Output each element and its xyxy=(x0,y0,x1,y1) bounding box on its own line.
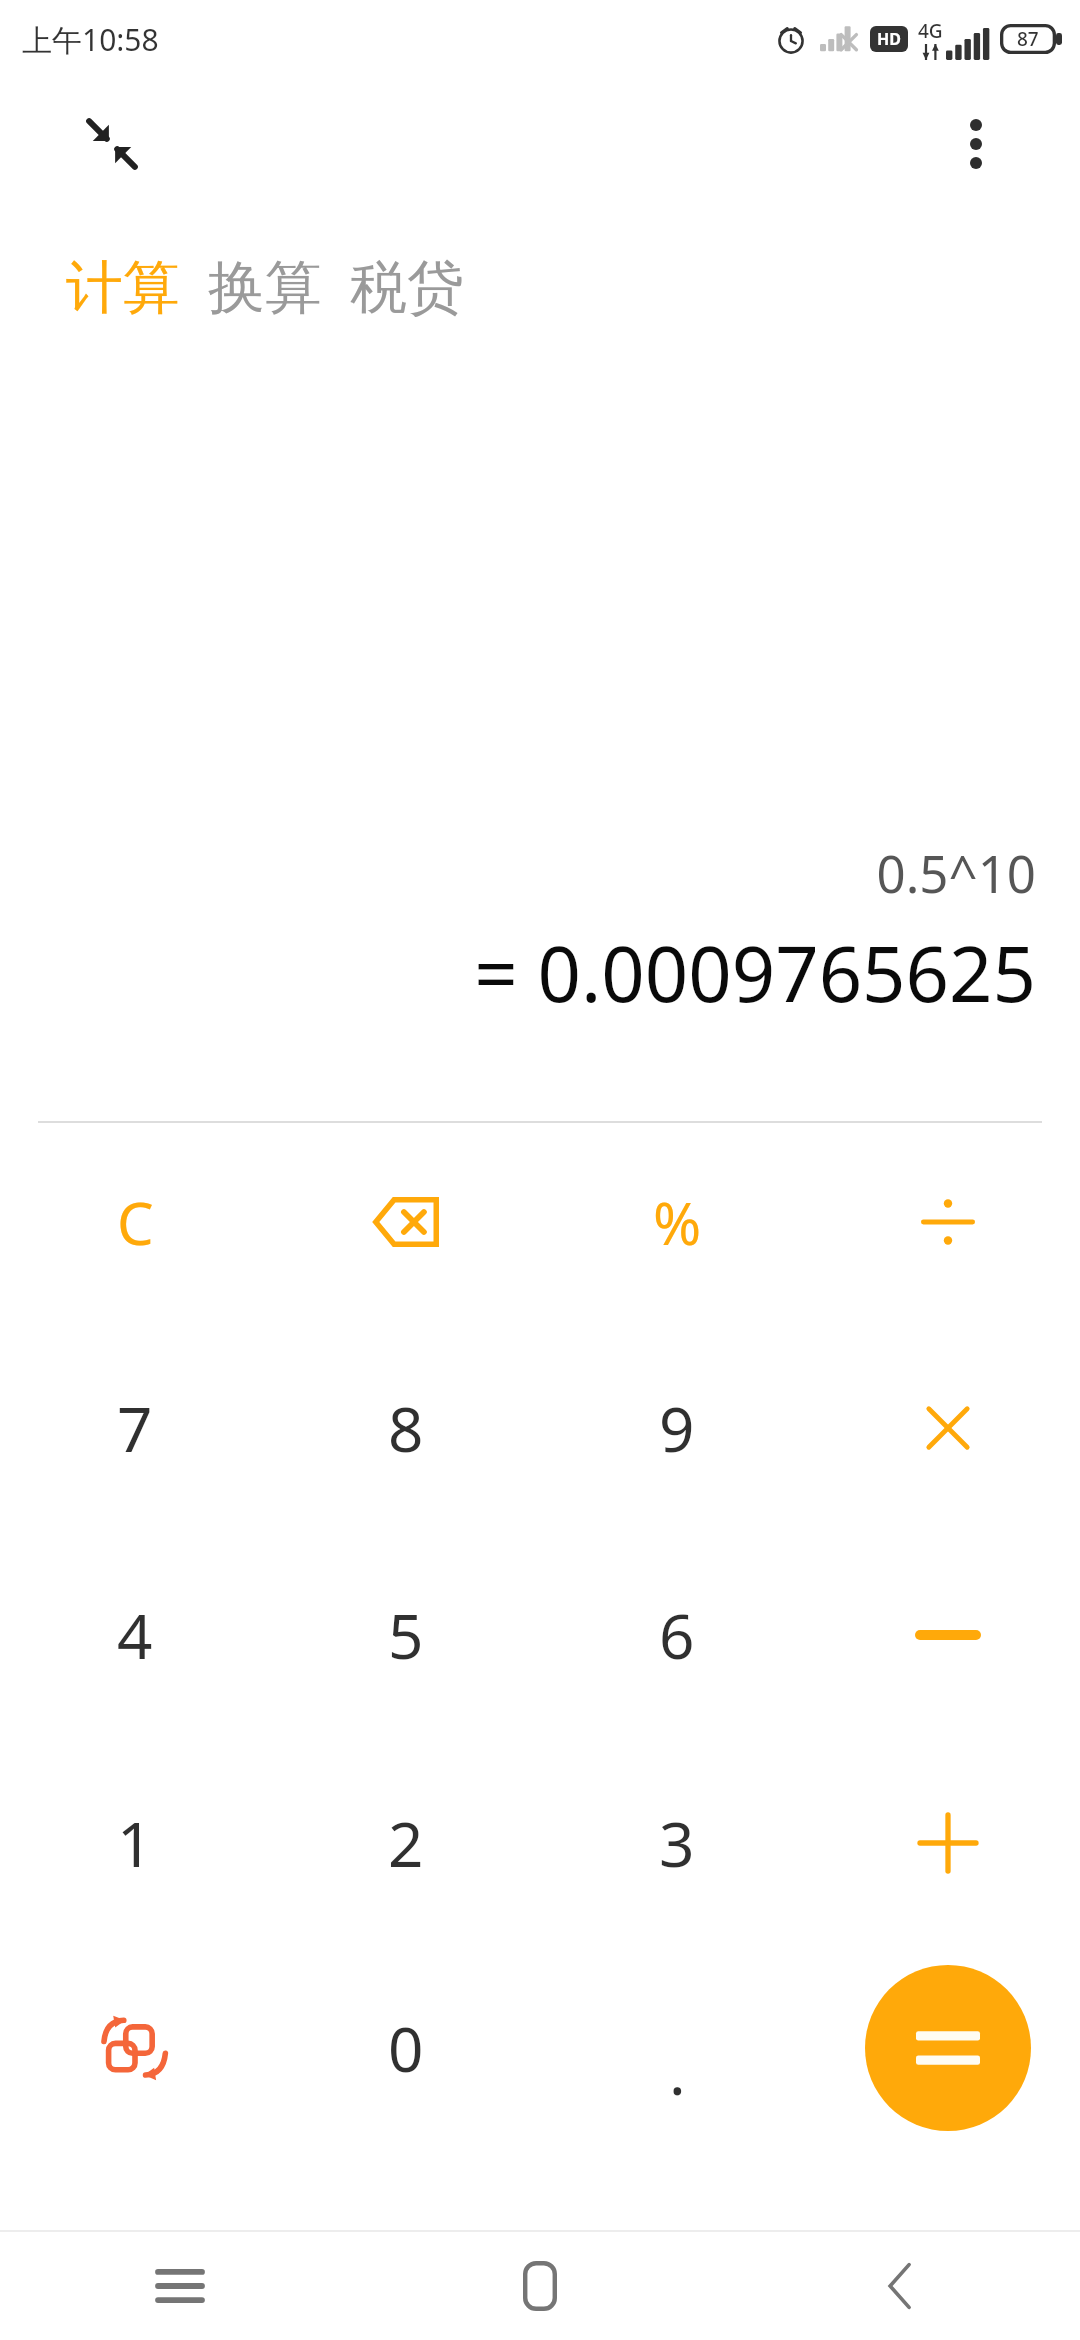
button[interactable]: Backspace xyxy=(286,1122,526,1322)
staticText: 5 xyxy=(388,1593,424,1677)
button[interactable]: Back xyxy=(720,2232,1080,2340)
button[interactable]: 计算 xyxy=(66,252,180,324)
staticText: = 0.0009765625 xyxy=(40,921,1036,1025)
staticText: 换算 xyxy=(208,252,322,324)
button[interactable]: 3 xyxy=(557,1743,797,1943)
button[interactable]: 税贷 xyxy=(350,252,464,324)
button[interactable]: 2 xyxy=(286,1743,526,1943)
button[interactable]: 0 xyxy=(286,1948,526,2148)
button[interactable]: Collapse xyxy=(76,108,148,180)
button[interactable]: % xyxy=(557,1122,797,1322)
button[interactable] xyxy=(828,1743,1068,1943)
staticText: 7 xyxy=(117,1386,153,1470)
staticText: 1 xyxy=(117,1801,153,1885)
staticText: C xyxy=(117,1183,154,1262)
staticText: 2 xyxy=(388,1801,424,1885)
staticText: 8 xyxy=(388,1386,424,1470)
button[interactable]: Recent apps xyxy=(0,2232,360,2340)
staticText: 4G xyxy=(918,18,943,44)
button[interactable]: Home xyxy=(360,2232,720,2340)
staticText: 4 xyxy=(117,1593,153,1677)
button[interactable]: 5 xyxy=(286,1535,526,1735)
button[interactable] xyxy=(828,1328,1068,1528)
staticText: 0.5^10 xyxy=(40,838,1036,907)
button[interactable]: . xyxy=(557,1948,797,2148)
button[interactable]: Convert xyxy=(15,1948,255,2148)
button[interactable]: C xyxy=(15,1122,255,1322)
button[interactable]: Equals xyxy=(865,1965,1031,2131)
button[interactable]: More options xyxy=(940,108,1012,180)
button[interactable]: 换算 xyxy=(208,252,322,324)
staticText: 0 xyxy=(388,2006,424,2090)
staticText: 3 xyxy=(659,1801,695,1885)
staticText: % xyxy=(653,1183,702,1262)
staticText: 9 xyxy=(659,1386,695,1470)
button[interactable]: 6 xyxy=(557,1535,797,1735)
button[interactable]: 8 xyxy=(286,1328,526,1528)
button[interactable] xyxy=(828,1122,1068,1322)
staticText: HD xyxy=(877,28,901,50)
button[interactable]: 1 xyxy=(15,1743,255,1943)
staticText: . xyxy=(669,2029,686,2113)
staticText: 87 xyxy=(1017,26,1039,52)
staticText: 上午10:58 xyxy=(22,19,159,60)
button[interactable] xyxy=(828,1535,1068,1735)
staticText: 税贷 xyxy=(350,252,464,324)
button[interactable]: 7 xyxy=(15,1328,255,1528)
staticText: 计算 xyxy=(66,252,180,324)
button[interactable]: 9 xyxy=(557,1328,797,1528)
button[interactable]: 4 xyxy=(15,1535,255,1735)
staticText: 6 xyxy=(659,1593,695,1677)
